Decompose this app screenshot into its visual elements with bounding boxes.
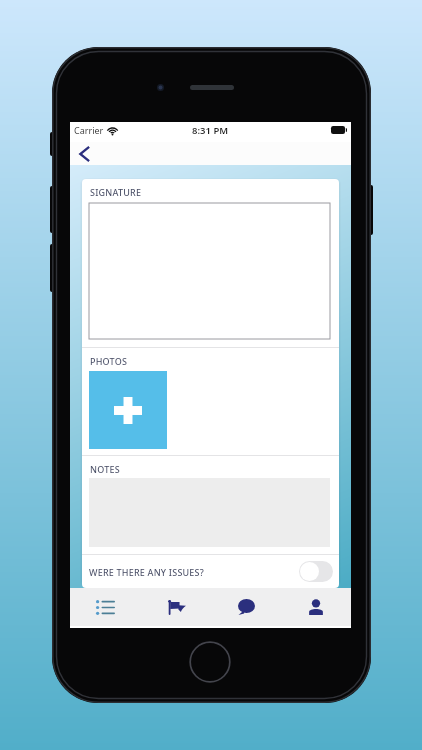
staticText: NOTES [90, 463, 120, 475]
button[interactable]: Profile [281, 588, 351, 626]
staticText: 8:31 PM [192, 124, 229, 137]
staticText: PHOTOS [90, 355, 128, 367]
button[interactable]: WERE THERE ANY ISSUES? [82, 555, 339, 588]
button[interactable]: Signature pad [89, 203, 330, 339]
staticText: SIGNATURE [90, 186, 142, 198]
staticText: Carrier [74, 124, 104, 136]
staticText: WERE THERE ANY ISSUES? [89, 566, 204, 578]
button[interactable]: Flags [141, 588, 211, 626]
button[interactable]: Back [72, 142, 96, 165]
button[interactable]: Orders [70, 588, 141, 626]
button[interactable]: Add photo [89, 371, 167, 449]
button[interactable]: Messages [211, 588, 281, 626]
